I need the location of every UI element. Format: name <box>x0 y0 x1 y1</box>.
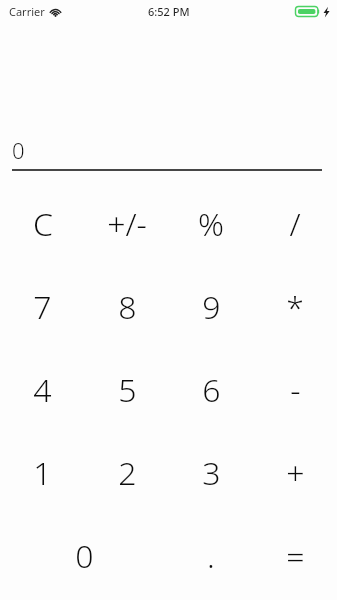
button[interactable]: 4 <box>0 348 85 431</box>
staticText: 9 <box>202 285 221 329</box>
button[interactable]: 1 <box>0 431 85 514</box>
staticText: / <box>289 202 301 246</box>
staticText: = <box>286 534 305 578</box>
staticText: + <box>286 451 305 495</box>
staticText: * <box>286 285 304 329</box>
button[interactable]: * <box>253 265 337 348</box>
staticText: 6:52 PM <box>148 4 190 19</box>
staticText: 6 <box>202 368 221 412</box>
other: Wi-Fi signal <box>49 7 62 17</box>
button[interactable]: 8 <box>85 265 169 348</box>
staticText: 7 <box>33 285 52 329</box>
button[interactable]: 0 <box>0 514 169 597</box>
staticText: . <box>207 534 215 578</box>
button[interactable]: 9 <box>169 265 253 348</box>
button[interactable]: C <box>0 182 85 265</box>
button[interactable]: 5 <box>85 348 169 431</box>
button[interactable]: . <box>169 514 253 597</box>
button[interactable]: 7 <box>0 265 85 348</box>
button[interactable]: = <box>253 514 337 597</box>
staticText: 0 <box>75 534 94 578</box>
button[interactable]: / <box>253 182 337 265</box>
staticText: % <box>198 202 224 246</box>
staticText: C <box>33 202 53 246</box>
staticText: 1 <box>33 451 52 495</box>
button[interactable]: + <box>253 431 337 514</box>
button[interactable]: 3 <box>169 431 253 514</box>
staticText: 2 <box>118 451 137 495</box>
button[interactable]: 6 <box>169 348 253 431</box>
staticText: - <box>290 368 301 412</box>
button[interactable]: +/- <box>85 182 169 265</box>
button[interactable]: % <box>169 182 253 265</box>
staticText: +/- <box>107 202 147 246</box>
button[interactable]: 2 <box>85 431 169 514</box>
staticText: 8 <box>118 285 137 329</box>
staticText: 3 <box>202 451 221 495</box>
other: Battery charging <box>295 5 321 18</box>
staticText: 5 <box>118 368 137 412</box>
staticText: Carrier <box>9 4 45 19</box>
staticText: 4 <box>33 368 52 412</box>
staticText: 0 <box>12 135 25 165</box>
button[interactable]: - <box>253 348 337 431</box>
